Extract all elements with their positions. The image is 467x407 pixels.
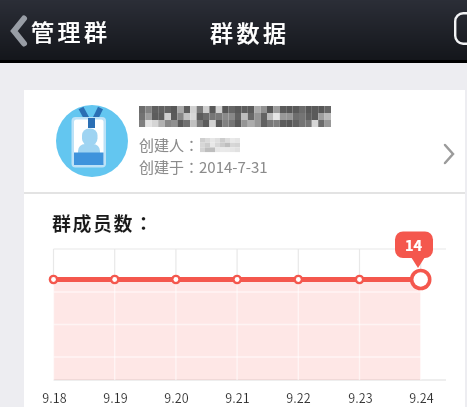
staticText: 9.22: [286, 388, 311, 405]
staticText: 创建于：2014-7-31: [139, 156, 268, 178]
staticText: 创建人：: [139, 134, 200, 156]
button[interactable]: [454, 12, 467, 45]
staticText: 9.24: [409, 388, 434, 405]
staticText: 群数据: [210, 15, 290, 48]
staticText: 管理群: [31, 14, 111, 47]
staticText: 9.18: [42, 388, 67, 405]
button[interactable]: 管理群: [0, 14, 111, 47]
button[interactable]: 创建人：: [24, 90, 465, 192]
staticText: 9.21: [225, 388, 250, 405]
staticText: 9.23: [348, 388, 373, 405]
staticText: 群成员数：: [52, 209, 155, 237]
staticText: 14: [405, 234, 423, 255]
staticText: 9.19: [103, 388, 128, 405]
staticText: 9.20: [164, 388, 189, 405]
